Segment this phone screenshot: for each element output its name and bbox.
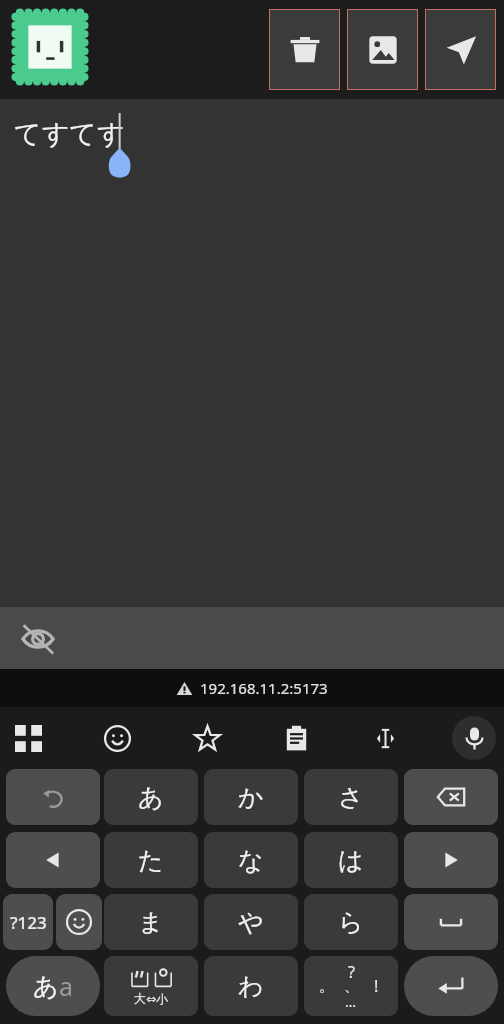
staticText: 192.168.11.2:5173 bbox=[200, 678, 328, 698]
button[interactable]: な bbox=[204, 832, 298, 888]
button[interactable]: は bbox=[304, 832, 398, 888]
staticText: 、 bbox=[344, 977, 359, 996]
button[interactable]: Send bbox=[425, 9, 496, 90]
button[interactable]: た bbox=[104, 832, 198, 888]
staticText: てすてす bbox=[14, 117, 125, 151]
button[interactable]: Cursor left bbox=[6, 832, 100, 888]
button[interactable]: Dakuten and small kana bbox=[104, 956, 198, 1016]
staticText: あ bbox=[138, 782, 164, 813]
staticText: わ bbox=[238, 971, 264, 1002]
button[interactable]: Space bbox=[404, 894, 498, 950]
button[interactable]: Keyboard layouts bbox=[10, 720, 46, 756]
button[interactable]: あ bbox=[104, 769, 198, 825]
button[interactable]: Move cursor bbox=[367, 720, 403, 756]
staticText: 。 bbox=[319, 977, 334, 996]
button[interactable]: Punctuation bbox=[304, 956, 398, 1016]
staticText: か bbox=[238, 782, 264, 813]
staticText: ! bbox=[374, 975, 379, 997]
staticText: ?123 bbox=[10, 911, 47, 934]
button[interactable]: Delete bbox=[269, 9, 340, 90]
staticText: 大⇔小 bbox=[134, 991, 169, 1006]
staticText: ま bbox=[138, 907, 164, 938]
staticText: や bbox=[238, 907, 264, 938]
button[interactable]: さ bbox=[304, 769, 398, 825]
button[interactable]: Emoji bbox=[99, 720, 135, 756]
button[interactable]: Favorites bbox=[189, 720, 225, 756]
button[interactable]: ま bbox=[104, 894, 198, 950]
button[interactable]: Voice input bbox=[452, 716, 496, 760]
button[interactable]: わ bbox=[204, 956, 298, 1016]
button[interactable]: Enter bbox=[404, 956, 498, 1016]
button[interactable]: Backspace bbox=[404, 769, 498, 825]
button[interactable]: Clipboard bbox=[278, 720, 314, 756]
button[interactable]: Cursor right bbox=[404, 832, 498, 888]
button[interactable]: ら bbox=[304, 894, 398, 950]
button[interactable]: Undo bbox=[6, 769, 100, 825]
button[interactable]: Insert image bbox=[347, 9, 418, 90]
other: Toggle visibility bbox=[20, 621, 56, 657]
button[interactable]: Emoji bbox=[56, 894, 102, 950]
button[interactable]: や bbox=[204, 894, 298, 950]
staticText: … bbox=[345, 992, 357, 1011]
button[interactable]: か bbox=[204, 769, 298, 825]
staticText: ? bbox=[348, 961, 355, 983]
staticText: た bbox=[138, 845, 164, 876]
button[interactable]: Switch input mode bbox=[6, 956, 100, 1016]
button[interactable]: ?123 bbox=[3, 894, 53, 950]
staticText: は bbox=[338, 845, 364, 876]
button[interactable]: Toggle visibility bbox=[0, 607, 504, 669]
staticText: a bbox=[59, 969, 74, 1003]
staticText: ら bbox=[338, 907, 364, 938]
staticText: さ bbox=[338, 782, 364, 813]
staticText: あ bbox=[33, 971, 59, 1002]
button[interactable]: Profile avatar bbox=[12, 9, 88, 85]
staticText: な bbox=[238, 845, 264, 876]
